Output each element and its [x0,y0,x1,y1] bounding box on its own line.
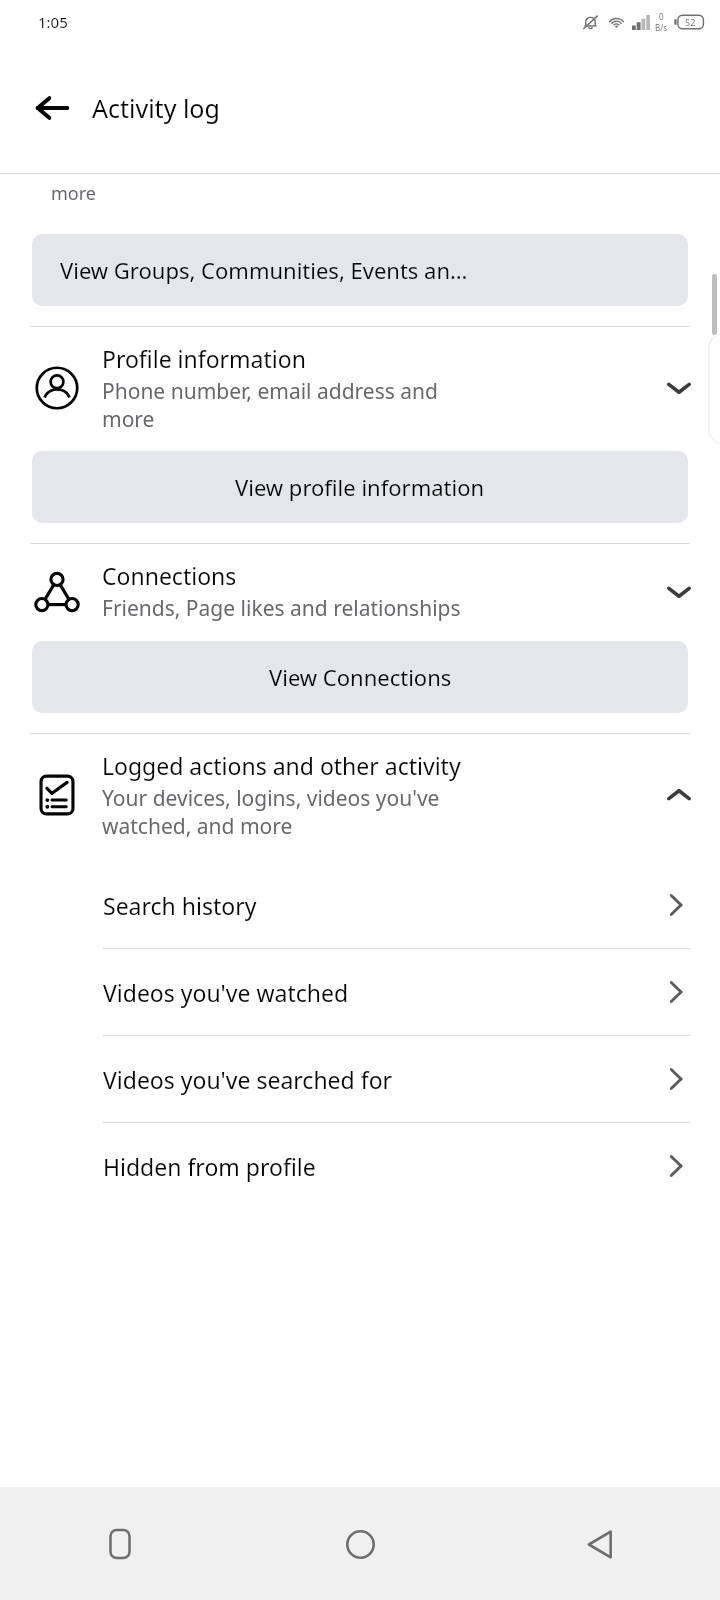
staticText: Videos you've searched for [103,1064,393,1095]
button[interactable]: Videos you've searched for [0,1036,720,1122]
staticText: B/s [655,22,668,33]
staticText: Search history [103,890,257,921]
staticText: Hidden from profile [103,1151,316,1182]
staticText: View Groups, Communities, Events an… [60,255,468,285]
staticText: View profile information [235,472,485,502]
button[interactable]: Connections [0,544,720,631]
staticText: Connections [102,560,237,591]
button[interactable]: Recent apps [84,1508,156,1580]
staticText: Phone number, email address and more [102,377,438,433]
button[interactable]: Back [26,82,78,134]
staticText: 1:05 [38,12,68,32]
staticText: Profile information [102,343,306,374]
button[interactable]: View Connections [32,641,688,713]
staticText: Your devices, logins, videos you've watc… [102,784,440,840]
staticText: Activity log [92,91,220,125]
button[interactable]: View profile information [32,451,688,523]
button[interactable]: Hidden from profile [0,1123,720,1209]
button[interactable]: Search history [0,862,720,948]
staticText: more [51,181,96,206]
button[interactable]: Home [324,1508,396,1580]
staticText: Videos you've watched [103,977,349,1008]
button[interactable]: Profile information [0,327,720,441]
staticText: 0 [659,11,664,22]
button[interactable]: Logged actions and other activity [0,734,720,848]
staticText: 52 [685,16,696,28]
staticText: Friends, Page likes and relationships [102,594,461,623]
staticText: View Connections [269,662,452,692]
button[interactable]: View Groups, Communities, Events an… [32,234,688,306]
button[interactable]: Back [564,1508,636,1580]
button[interactable]: Videos you've watched [0,949,720,1035]
staticText: Logged actions and other activity [102,750,461,781]
